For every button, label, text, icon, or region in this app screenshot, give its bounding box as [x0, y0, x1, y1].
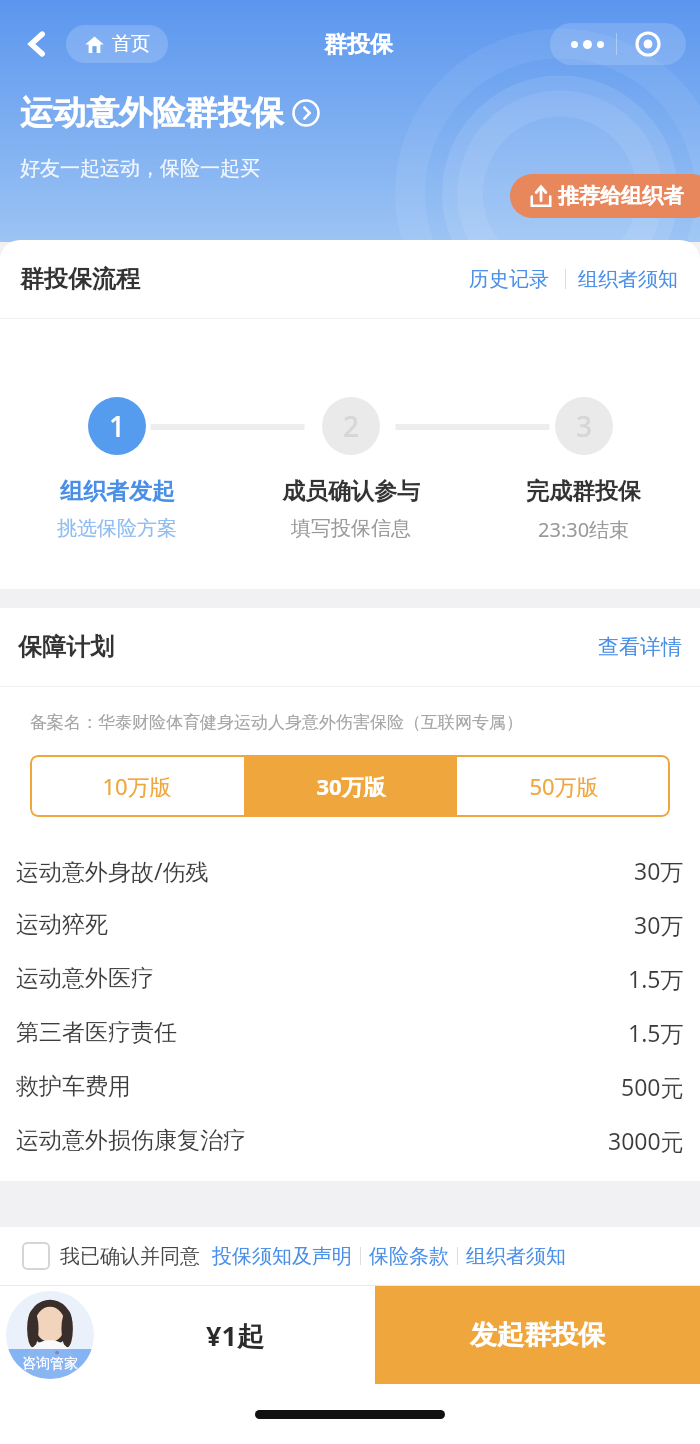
staticText: 保障计划 [18, 632, 114, 662]
button[interactable]: 2 [234, 397, 467, 541]
staticText: 2 [343, 407, 360, 445]
staticText: 填写投保信息 [291, 516, 411, 541]
staticText: 第三者医疗责任 [16, 1018, 177, 1047]
staticText: 投保须知及声明 [212, 1244, 352, 1269]
staticText: 挑选保险方案 [57, 516, 177, 541]
staticText: 群投保流程 [20, 264, 140, 294]
button[interactable]: 保险条款 [369, 1244, 449, 1269]
staticText: 运动意外损伤康复治疗 [16, 1126, 246, 1155]
staticText: 运动意外险群投保 [20, 92, 284, 134]
staticText: 运动意外身故/伤残 [16, 855, 209, 886]
staticText: 3000元 [608, 1125, 684, 1156]
button[interactable]: 推荐给组织者 [510, 174, 700, 218]
staticText: 30万版 [316, 771, 386, 801]
staticText: 我已确认并同意 [60, 1244, 200, 1269]
button[interactable]: 发起群投保 [375, 1286, 700, 1384]
staticText: 完成群投保 [526, 477, 641, 506]
button[interactable]: More options [550, 23, 686, 65]
staticText: 备案名：华泰财险体育健身运动人身意外伤害保险（互联网专属） [30, 712, 523, 733]
button[interactable]: I confirm and agree checkbox [22, 1242, 50, 1270]
staticText: 发起群投保 [470, 1318, 605, 1352]
staticText: 运动意外医疗 [16, 964, 154, 993]
button[interactable]: 组织者须知 [466, 1244, 566, 1269]
staticText: ¥1起 [206, 1317, 264, 1354]
staticText: 好友一起运动，保险一起买 [20, 156, 260, 181]
staticText: 30万 [634, 909, 684, 940]
staticText: 保险条款 [369, 1244, 449, 1269]
button[interactable]: 1 [0, 397, 234, 541]
button[interactable]: Back [14, 21, 60, 67]
staticText: 1.5万 [628, 963, 684, 994]
button[interactable]: 10万版 [30, 755, 244, 817]
staticText: 1 [109, 407, 126, 445]
staticText: 30万 [634, 855, 684, 886]
staticText: 组织者发起 [60, 477, 175, 506]
staticText: 救护车费用 [16, 1072, 131, 1101]
button[interactable]: 查看详情 [598, 630, 682, 664]
button[interactable]: 历史记录 [463, 263, 555, 296]
staticText: 组织者须知 [578, 267, 678, 292]
staticText: 咨询管家 [22, 1355, 78, 1373]
staticText: 组织者须知 [466, 1244, 566, 1269]
staticText: 3 [576, 407, 593, 445]
staticText: 历史记录 [469, 267, 549, 292]
staticText: 10万版 [102, 771, 172, 801]
button[interactable]: 运动意外险群投保 [20, 92, 320, 134]
staticText: 成员确认参与 [282, 477, 420, 506]
staticText: 运动猝死 [16, 910, 108, 939]
button[interactable]: 投保须知及声明 [212, 1244, 352, 1269]
staticText: 查看详情 [598, 634, 682, 660]
button[interactable]: 组织者须知 [576, 263, 680, 296]
staticText: 群投保 [324, 30, 393, 59]
button[interactable]: 首页 [66, 25, 168, 63]
staticText: 23:30结束 [538, 516, 630, 543]
button[interactable]: Consult advisor [6, 1291, 94, 1379]
staticText: 1.5万 [628, 1017, 684, 1048]
staticText: 50万版 [529, 771, 599, 801]
button[interactable]: 3 [467, 397, 700, 543]
button[interactable]: 50万版 [457, 755, 670, 817]
staticText: 首页 [112, 32, 150, 56]
staticText: 推荐给组织者 [558, 183, 684, 209]
staticText: 500元 [621, 1071, 684, 1102]
button[interactable]: 30万版 [244, 755, 457, 817]
